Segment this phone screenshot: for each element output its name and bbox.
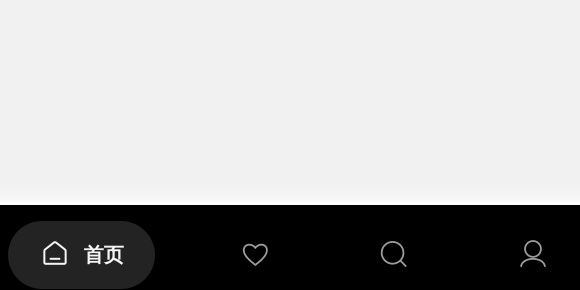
- button[interactable]: Likes: [217, 221, 293, 289]
- staticText: 首页: [84, 243, 124, 267]
- button[interactable]: Profile: [494, 221, 570, 289]
- button[interactable]: Search: [356, 221, 432, 289]
- button[interactable]: 首页: [8, 221, 155, 289]
